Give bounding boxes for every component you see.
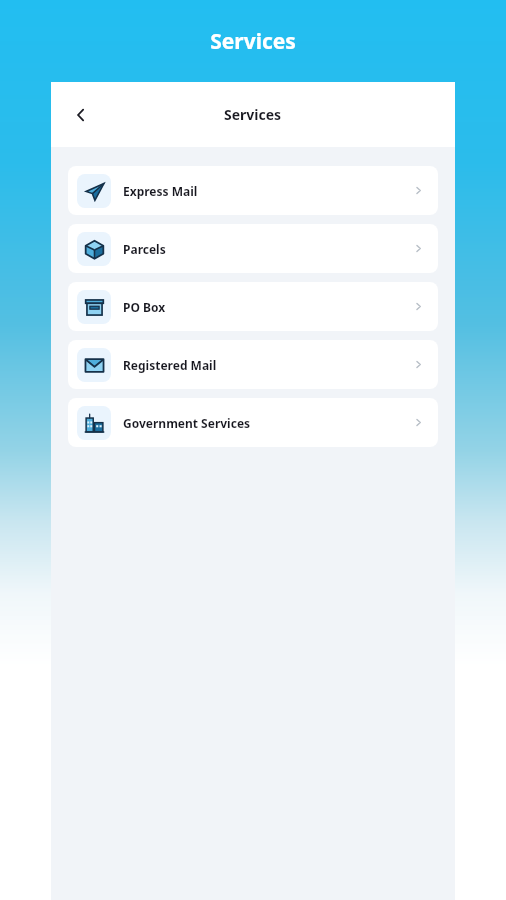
staticText: PO Box — [123, 299, 166, 315]
staticText: Registered Mail — [123, 357, 217, 373]
button[interactable]: PO Box — [68, 282, 438, 331]
staticText: Services — [224, 105, 282, 124]
button[interactable]: Back — [61, 95, 101, 135]
staticText: Services — [210, 27, 296, 56]
staticText: Parcels — [123, 241, 166, 257]
button[interactable]: Registered Mail — [68, 340, 438, 389]
button[interactable]: Government Services — [68, 398, 438, 447]
button[interactable]: Express Mail — [68, 166, 438, 215]
staticText: Express Mail — [123, 183, 198, 199]
button[interactable]: Parcels — [68, 224, 438, 273]
staticText: Government Services — [123, 415, 251, 431]
